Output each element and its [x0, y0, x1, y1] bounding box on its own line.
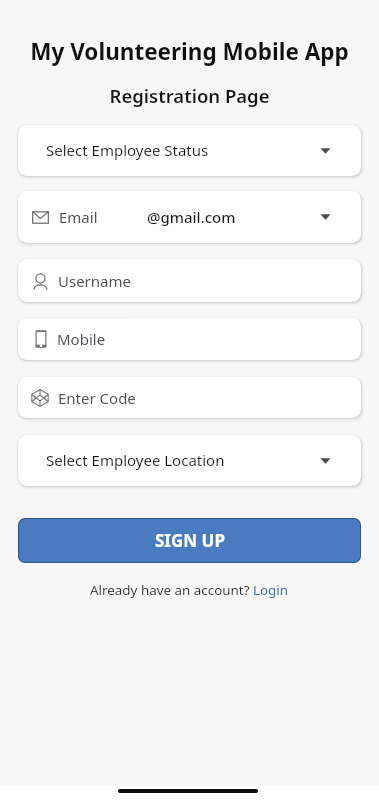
other: Open employee status dropdown	[320, 145, 331, 157]
button[interactable]: Enter Code	[18, 377, 361, 418]
button[interactable]: Login	[253, 581, 289, 599]
other: Open employee location dropdown	[320, 455, 331, 467]
staticText: Enter Code	[58, 388, 136, 408]
staticText: Select Employee Status	[46, 140, 209, 160]
staticText: Select Employee Location	[46, 450, 225, 470]
button[interactable]: Select Employee Status	[18, 125, 361, 176]
staticText: My Volunteering Mobile App	[0, 36, 379, 67]
staticText: @gmail.com	[147, 207, 236, 227]
staticText: Email	[59, 207, 98, 227]
button[interactable]: SIGN UP	[19, 519, 360, 562]
button[interactable]: Email	[18, 191, 361, 243]
staticText: Username	[58, 271, 131, 291]
button[interactable]: Username	[18, 259, 361, 302]
button[interactable]: Mobile	[18, 318, 361, 360]
other: Open email domain dropdown	[320, 211, 331, 223]
button[interactable]: Select Employee Location	[18, 435, 361, 486]
staticText: Already have an account?	[90, 581, 253, 599]
staticText: Mobile	[57, 329, 106, 349]
staticText: SIGN UP	[155, 529, 225, 552]
staticText: Registration Page	[0, 83, 379, 108]
